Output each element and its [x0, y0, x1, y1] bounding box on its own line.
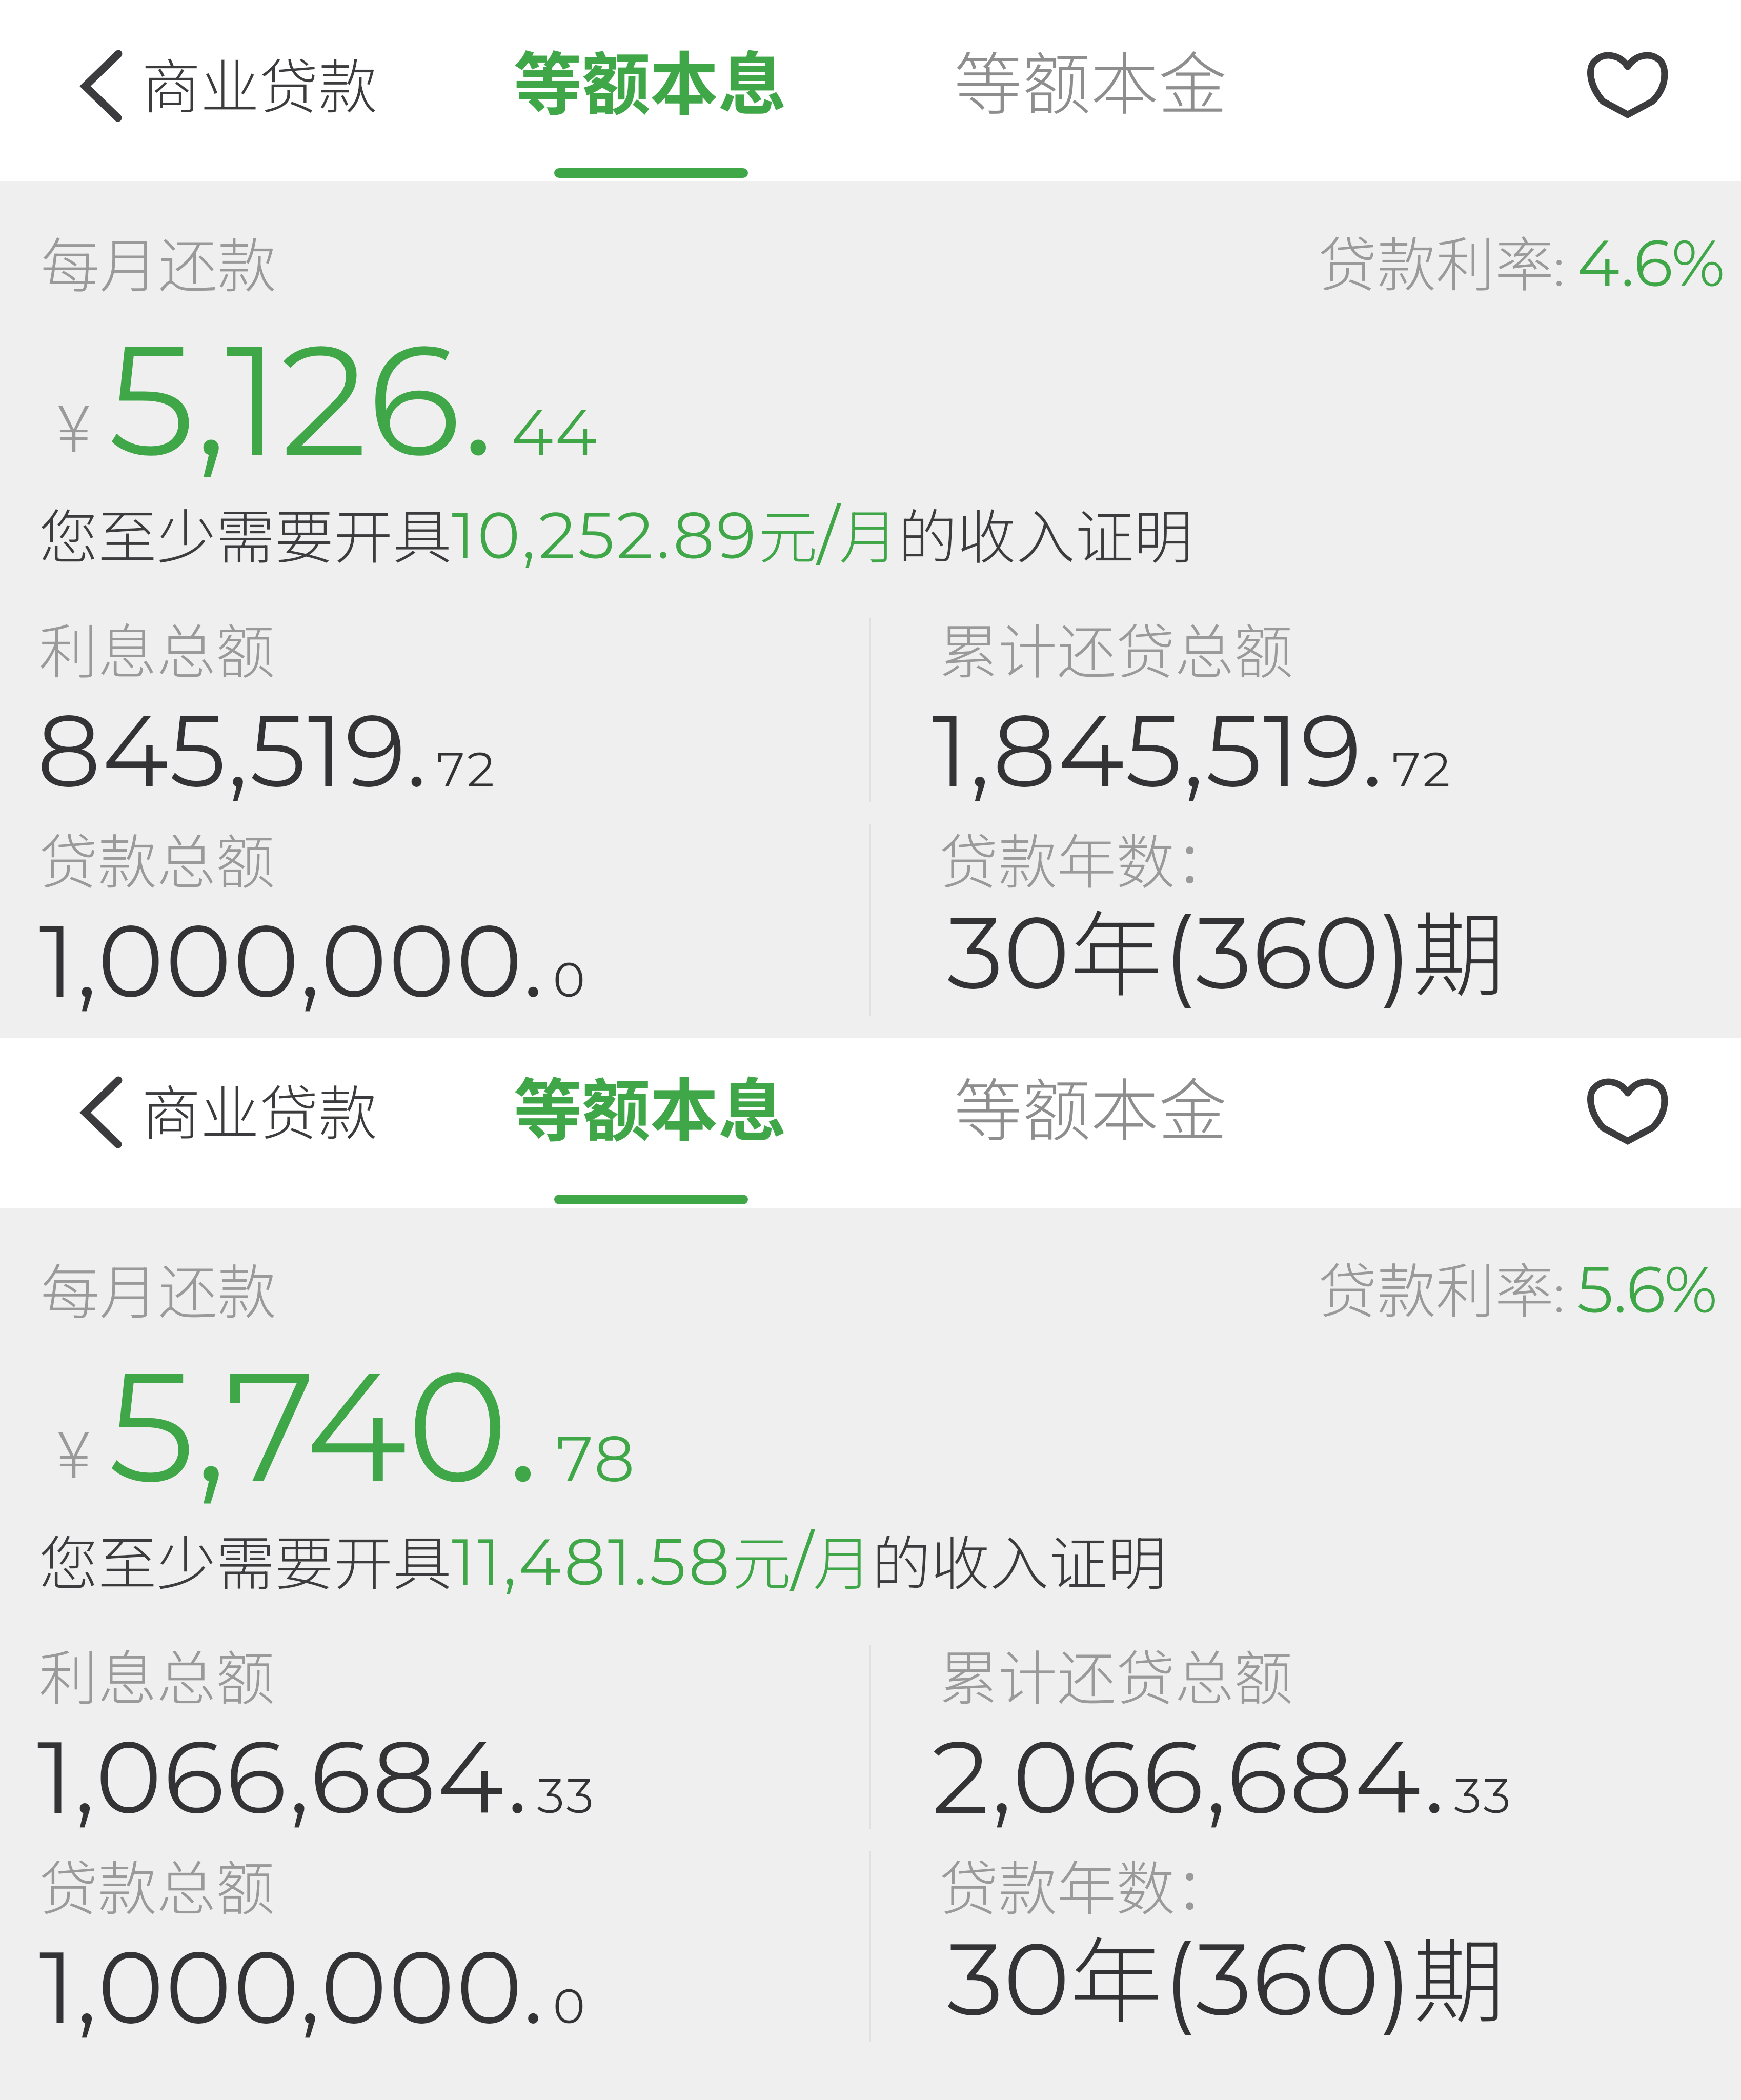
staticText: 贷款利率: 5.6%: [1318, 1244, 1718, 1330]
staticText: 累计还贷总额: [939, 1631, 1293, 1717]
staticText: 等额本金: [954, 30, 1227, 129]
button[interactable]: [948, 26, 1236, 154]
staticText: 5,126.44: [108, 306, 599, 494]
staticText: 利息总额: [39, 1631, 275, 1717]
button[interactable]: [138, 32, 395, 139]
staticText: 30年(360)期: [947, 1907, 1505, 2042]
button[interactable]: [138, 1058, 395, 1166]
staticText: 1,000,000.0: [39, 899, 588, 1022]
staticText: 商业贷款: [141, 40, 378, 126]
button[interactable]: Favorite: [1558, 1052, 1697, 1170]
button[interactable]: Back: [64, 32, 141, 140]
staticText: ¥: [56, 377, 91, 470]
staticText: 贷款总额: [39, 815, 275, 901]
staticText: 等额本息: [514, 1056, 786, 1155]
staticText: 等额本息: [514, 30, 786, 129]
staticText: 1,000,000.0: [39, 1926, 588, 2048]
button[interactable]: Favorite: [1558, 26, 1697, 144]
staticText: 5,740.78: [108, 1332, 637, 1520]
staticText: 1,066,684.33: [37, 1715, 596, 1838]
button[interactable]: [948, 1052, 1236, 1180]
button[interactable]: Back: [64, 1059, 141, 1166]
staticText: 您至少需要开具10,252.89元/月的收入证明: [39, 490, 1193, 576]
button[interactable]: [508, 1052, 795, 1180]
staticText: 贷款利率: 4.6%: [1318, 218, 1725, 304]
staticText: 2,066,684.33: [932, 1715, 1513, 1838]
staticText: 贷款年数：: [939, 815, 1234, 901]
staticText: ¥: [56, 1403, 91, 1497]
staticText: 每月还款: [41, 219, 277, 305]
staticText: 您至少需要开具11,481.58元/月的收入证明: [39, 1517, 1167, 1602]
staticText: 贷款年数：: [939, 1842, 1234, 1927]
staticText: 845,519.72: [37, 689, 497, 812]
button[interactable]: [508, 26, 795, 154]
staticText: 贷款总额: [39, 1842, 275, 1927]
staticText: 商业贷款: [141, 1066, 378, 1152]
staticText: 等额本金: [954, 1056, 1227, 1155]
staticText: 累计还贷总额: [939, 605, 1293, 691]
staticText: 每月还款: [41, 1245, 277, 1331]
staticText: 1,845,519.72: [932, 689, 1452, 812]
staticText: 30年(360)期: [947, 881, 1505, 1015]
staticText: 利息总额: [39, 605, 275, 691]
